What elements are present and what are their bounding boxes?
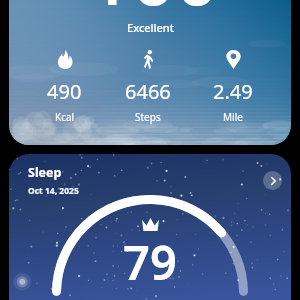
button[interactable]: 6466 — [125, 50, 171, 124]
staticText: 79 — [123, 230, 177, 294]
staticText: Oct 14, 2025 — [28, 185, 79, 197]
staticText: Steps — [135, 110, 161, 124]
staticText: 6466 — [125, 78, 171, 105]
button[interactable]: 2.49 — [213, 50, 253, 124]
button[interactable]: 100 — [9, 0, 291, 145]
staticText: 100 — [88, 0, 219, 28]
staticText: Mile — [223, 110, 243, 124]
staticText: Sleep — [28, 164, 62, 181]
staticText: Kcal — [55, 110, 75, 124]
button[interactable]: Open sleep details — [263, 171, 282, 190]
staticText: 2.49 — [213, 78, 253, 105]
staticText: 490 — [47, 78, 82, 105]
button[interactable]: 490 — [47, 50, 82, 124]
staticText: Excellent — [127, 20, 174, 35]
